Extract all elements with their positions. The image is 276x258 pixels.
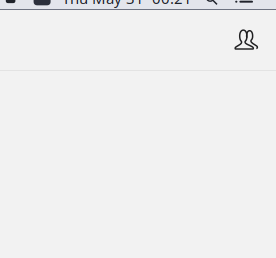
staticText: Thu May 31 00:21: [62, 0, 192, 8]
button[interactable]: Contacts: [234, 29, 276, 51]
